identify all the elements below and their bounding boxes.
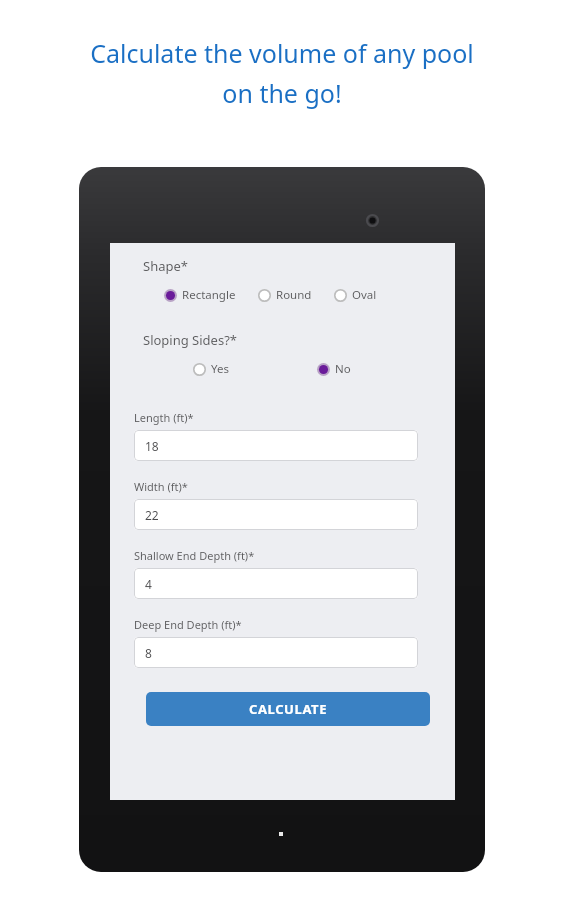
- staticText: Sloping Sides?*: [143, 331, 237, 349]
- staticText: Round: [276, 287, 312, 303]
- staticText: Deep End Depth (ft)*: [134, 617, 242, 632]
- button[interactable]: Oval: [334, 287, 377, 303]
- staticText: CALCULATE: [249, 700, 328, 718]
- button[interactable]: 4: [134, 568, 418, 599]
- staticText: 8: [145, 645, 152, 661]
- staticText: Shallow End Depth (ft)*: [134, 548, 255, 563]
- staticText: Length (ft)*: [134, 410, 194, 425]
- button[interactable]: 8: [134, 637, 418, 668]
- button[interactable]: CALCULATE: [146, 692, 430, 726]
- staticText: on the go!: [222, 76, 342, 110]
- staticText: Calculate the volume of any pool: [90, 36, 474, 70]
- button[interactable]: 18: [134, 430, 418, 461]
- staticText: No: [335, 361, 351, 377]
- staticText: 4: [145, 576, 152, 592]
- button[interactable]: Rectangle: [164, 287, 236, 303]
- staticText: Oval: [352, 287, 377, 303]
- button[interactable]: Round: [258, 287, 312, 303]
- button[interactable]: Yes: [193, 361, 229, 377]
- staticText: 22: [145, 507, 159, 523]
- button[interactable]: 22: [134, 499, 418, 530]
- staticText: Width (ft)*: [134, 479, 188, 494]
- staticText: Shape*: [143, 257, 188, 275]
- staticText: Rectangle: [182, 287, 236, 303]
- staticText: Yes: [211, 361, 229, 377]
- button[interactable]: No: [317, 361, 351, 377]
- staticText: 18: [145, 438, 159, 454]
